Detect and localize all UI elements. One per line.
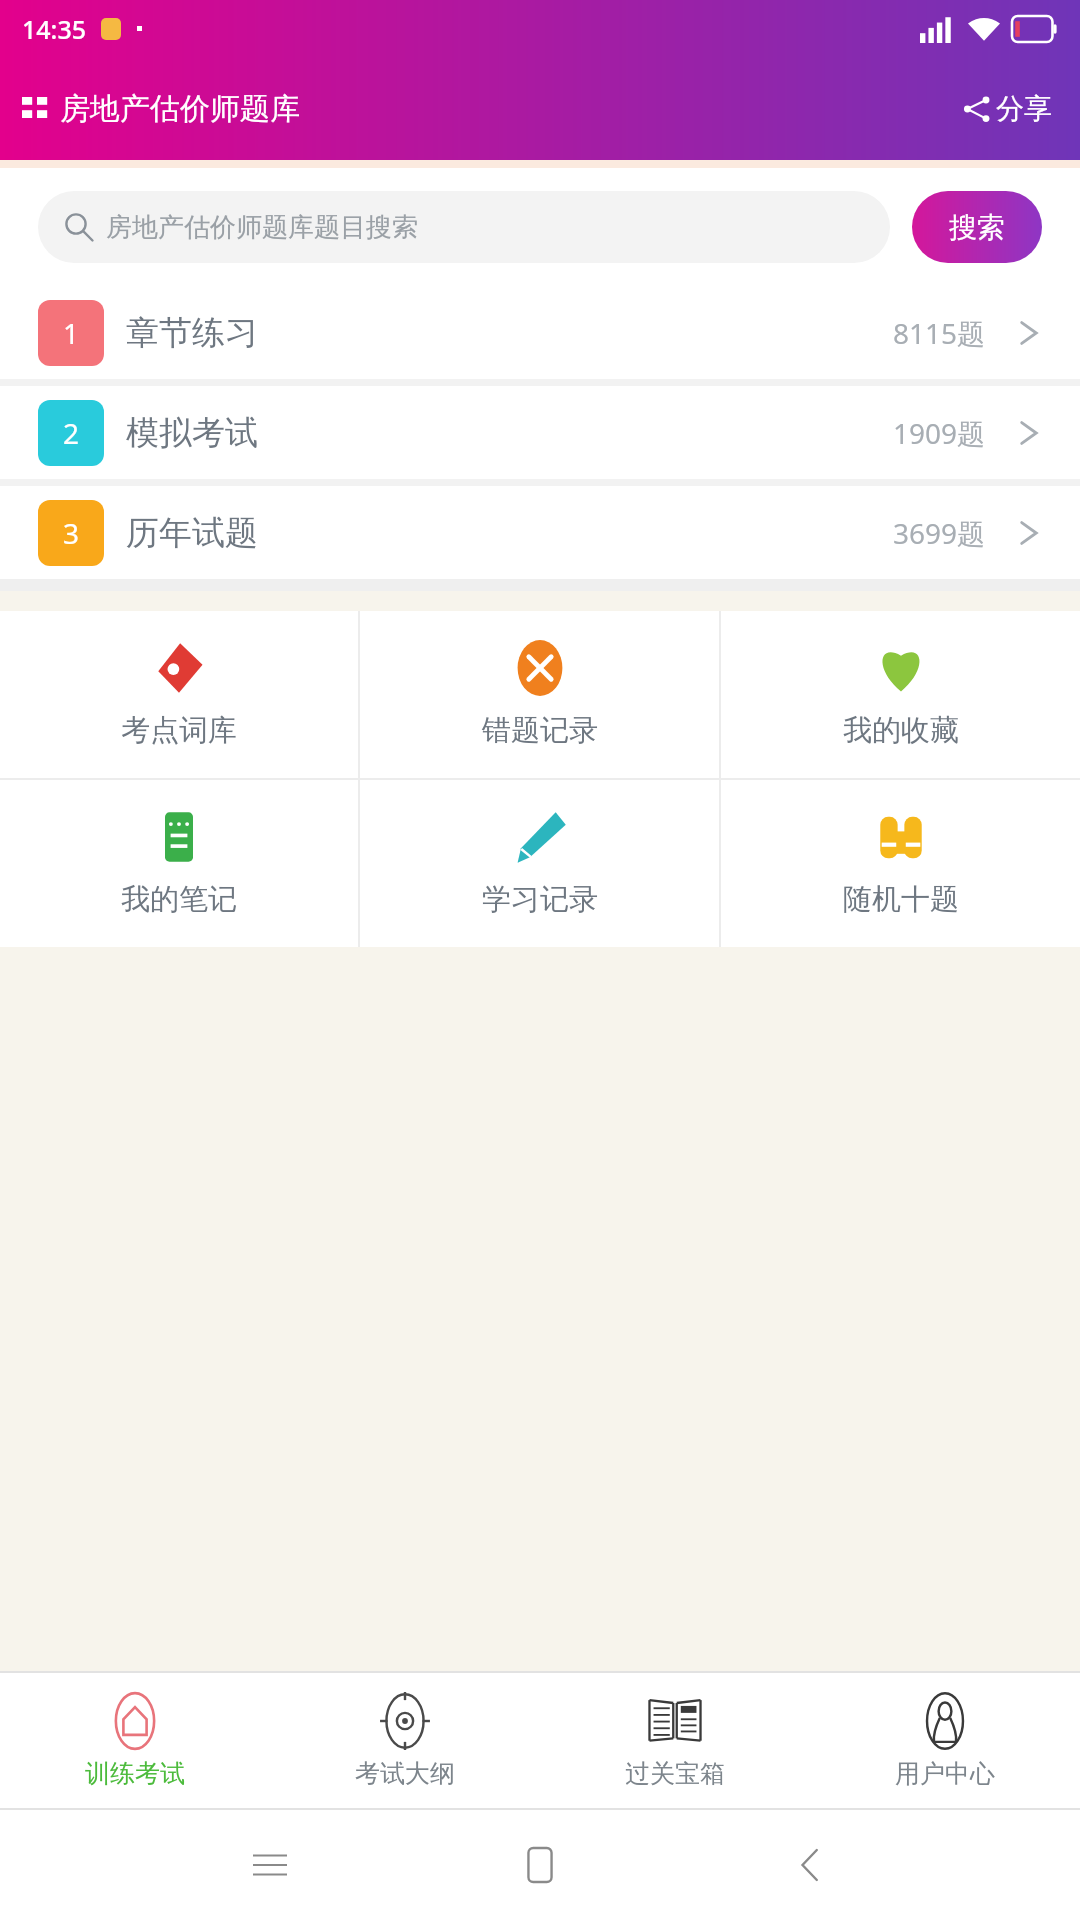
- button[interactable]: 我的笔记: [0, 780, 358, 947]
- button[interactable]: 1: [0, 286, 1080, 379]
- staticText: 14:35: [22, 12, 87, 46]
- other: Back: [793, 1848, 827, 1882]
- staticText: 考试大纲: [355, 1758, 455, 1789]
- button[interactable]: 过关宝箱: [540, 1673, 810, 1808]
- button[interactable]: 训练考试: [0, 1673, 270, 1808]
- staticText: 分享: [996, 91, 1052, 126]
- staticText: 章节练习: [126, 312, 258, 354]
- staticText: 房地产估价师题库题目搜索: [106, 211, 418, 244]
- staticText: 过关宝箱: [625, 1758, 725, 1789]
- other: Share: [962, 94, 992, 124]
- button[interactable]: 随机十题: [721, 780, 1080, 947]
- button[interactable]: 2: [0, 386, 1080, 479]
- staticText: 搜索: [949, 210, 1005, 245]
- staticText: 学习记录: [482, 881, 598, 918]
- staticText: 历年试题: [126, 512, 258, 554]
- staticText: 我的笔记: [121, 881, 237, 918]
- staticText: 3: [63, 514, 80, 552]
- staticText: 2: [63, 414, 80, 452]
- other: Recents: [253, 1848, 287, 1882]
- button[interactable]: Back: [675, 1848, 945, 1882]
- staticText: 1: [63, 314, 80, 352]
- staticText: 训练考试: [85, 1758, 185, 1789]
- button[interactable]: 房地产估价师题库题目搜索: [38, 191, 890, 263]
- button[interactable]: 搜索: [912, 191, 1042, 263]
- button[interactable]: 错题记录: [360, 611, 719, 778]
- staticText: 我的收藏: [843, 712, 959, 749]
- staticText: 随机十题: [843, 881, 959, 918]
- staticText: 1909题: [893, 414, 986, 452]
- button[interactable]: 考点词库: [0, 611, 358, 778]
- other: Home: [523, 1848, 557, 1882]
- button[interactable]: 用户中心: [810, 1673, 1080, 1808]
- button[interactable]: 3: [0, 486, 1080, 579]
- button[interactable]: 学习记录: [360, 780, 719, 947]
- staticText: 模拟考试: [126, 412, 258, 454]
- button[interactable]: Recents: [135, 1848, 405, 1882]
- button[interactable]: 我的收藏: [721, 611, 1080, 778]
- staticText: 用户中心: [895, 1758, 995, 1789]
- button[interactable]: Share: [956, 85, 1058, 132]
- staticText: 错题记录: [482, 712, 598, 749]
- staticText: 考点词库: [121, 712, 237, 749]
- staticText: 3699题: [893, 514, 986, 552]
- staticText: 8115题: [893, 314, 986, 352]
- button[interactable]: Home: [405, 1848, 675, 1882]
- staticText: 房地产估价师题库: [60, 90, 300, 128]
- button[interactable]: 考试大纲: [270, 1673, 540, 1808]
